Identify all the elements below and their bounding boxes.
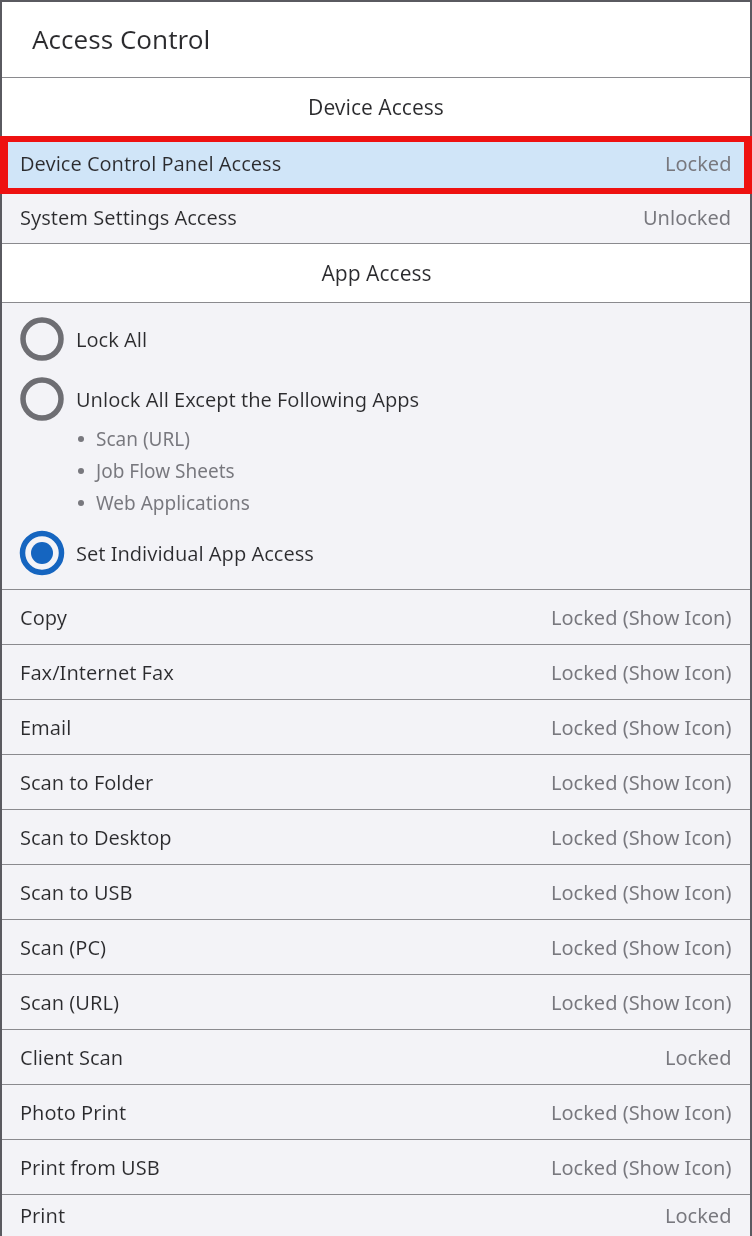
button[interactable]: Print from USB bbox=[0, 1140, 752, 1194]
staticText: Unlock All Except the Following Apps bbox=[76, 386, 420, 413]
staticText: Locked (Show Icon) bbox=[551, 769, 732, 796]
staticText: Locked (Show Icon) bbox=[551, 659, 732, 686]
button[interactable]: Photo Print bbox=[0, 1085, 752, 1139]
staticText: Device Control Panel Access bbox=[20, 150, 282, 177]
staticText: Print bbox=[20, 1202, 66, 1229]
staticText: Photo Print bbox=[20, 1099, 127, 1126]
staticText: Scan (URL) bbox=[96, 426, 190, 452]
staticText: Access Control bbox=[32, 21, 211, 56]
staticText: Print from USB bbox=[20, 1154, 160, 1181]
staticText: Locked (Show Icon) bbox=[551, 879, 732, 906]
staticText: Client Scan bbox=[20, 1044, 124, 1071]
button[interactable]: Scan to Folder bbox=[0, 755, 752, 809]
staticText: Unlocked bbox=[643, 204, 732, 231]
staticText: System Settings Access bbox=[20, 204, 237, 231]
staticText: Locked bbox=[665, 150, 732, 177]
button[interactable]: Device Control Panel Access bbox=[0, 137, 752, 190]
staticText: Job Flow Sheets bbox=[96, 458, 235, 484]
button[interactable]: Lock All bbox=[0, 303, 752, 369]
staticText: Locked (Show Icon) bbox=[551, 824, 732, 851]
button[interactable]: Unlock All Except the Following Apps bbox=[0, 369, 752, 423]
staticText: Set Individual App Access bbox=[76, 540, 314, 567]
staticText: Scan to USB bbox=[20, 879, 133, 906]
staticText: Device Access bbox=[308, 93, 444, 122]
button[interactable]: Print bbox=[0, 1195, 752, 1236]
staticText: Locked (Show Icon) bbox=[551, 604, 732, 631]
button[interactable]: Client Scan bbox=[0, 1030, 752, 1084]
staticText: Copy bbox=[20, 604, 67, 631]
staticText: Lock All bbox=[76, 326, 148, 353]
button[interactable]: Fax/Internet Fax bbox=[0, 645, 752, 699]
staticText: Fax/Internet Fax bbox=[20, 659, 174, 686]
button[interactable]: Set Individual App Access bbox=[0, 525, 752, 589]
staticText: Scan (PC) bbox=[20, 934, 107, 961]
staticText: Email bbox=[20, 714, 72, 741]
button[interactable]: Copy bbox=[0, 590, 752, 644]
button[interactable]: System Settings Access bbox=[0, 191, 752, 243]
button[interactable]: Scan to USB bbox=[0, 865, 752, 919]
staticText: Locked bbox=[665, 1044, 732, 1071]
staticText: Scan (URL) bbox=[20, 989, 119, 1016]
staticText: Locked bbox=[665, 1202, 732, 1229]
staticText: Locked (Show Icon) bbox=[551, 989, 732, 1016]
staticText: Locked (Show Icon) bbox=[551, 1099, 732, 1126]
staticText: Scan to Folder bbox=[20, 769, 154, 796]
staticText: Locked (Show Icon) bbox=[551, 1154, 732, 1181]
button[interactable]: Scan (PC) bbox=[0, 920, 752, 974]
button[interactable]: Scan (URL) bbox=[0, 975, 752, 1029]
staticText: Web Applications bbox=[96, 490, 250, 516]
button[interactable]: Email bbox=[0, 700, 752, 754]
staticText: Locked (Show Icon) bbox=[551, 934, 732, 961]
staticText: Locked (Show Icon) bbox=[551, 714, 732, 741]
staticText: Scan to Desktop bbox=[20, 824, 172, 851]
staticText: App Access bbox=[321, 259, 432, 288]
button[interactable]: Scan to Desktop bbox=[0, 810, 752, 864]
